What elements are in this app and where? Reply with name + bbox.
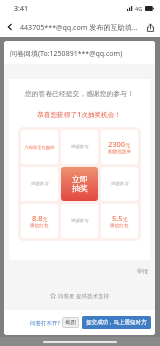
staticText: 443705***@qq.com 发布的互助填... xyxy=(20,22,141,32)
staticText: 立即 抽奖 xyxy=(72,174,88,194)
button[interactable]: 六福珠宝红酸奶 xyxy=(21,130,58,164)
staticText: 3:41 xyxy=(14,4,28,14)
staticText: 截图 xyxy=(65,319,76,326)
button[interactable]: Back xyxy=(0,17,20,37)
staticText: 感谢参与 xyxy=(71,144,89,150)
button[interactable]: 举报 xyxy=(137,268,155,275)
button[interactable]: 感谢参与 xyxy=(101,167,138,201)
staticText: 2300元 xyxy=(108,139,131,149)
staticText: 您的答卷已经提交，感谢您的参与！ xyxy=(25,89,134,98)
staticText: 8.8元 xyxy=(32,213,48,223)
staticText: 5.5元 xyxy=(112,213,128,223)
button[interactable]: 提交成功，马上通知对方 xyxy=(82,316,151,329)
staticText: 感谢参与 xyxy=(31,181,49,187)
staticText: 感谢参与 xyxy=(111,181,129,187)
staticText: 感谢参与 xyxy=(71,218,89,224)
button[interactable]: 感谢参与 xyxy=(61,130,98,164)
button[interactable]: 8.8元 xyxy=(21,204,58,238)
button[interactable]: 立即 抽奖 xyxy=(61,167,98,201)
staticText: 提交成功，马上通知对方 xyxy=(86,319,147,326)
button[interactable]: 5.5元 xyxy=(101,204,138,238)
button[interactable]: 感谢参与 xyxy=(21,167,58,201)
staticText: 购物优惠券 xyxy=(108,149,131,155)
staticText: 问卷星 提供技术支持 xyxy=(58,292,109,300)
staticText: 微信红包 xyxy=(110,223,129,229)
button[interactable]: Share xyxy=(141,17,160,37)
staticText: 4G xyxy=(135,5,143,12)
staticText: 恭喜您获得了1次抽奖机会！ xyxy=(37,110,122,119)
button[interactable]: 2300元 xyxy=(101,130,138,164)
button[interactable]: 问卷打不开? xyxy=(30,319,60,327)
staticText: 微信红包 xyxy=(30,223,49,229)
staticText: 问卷回填(To:1250891***@qq.com) xyxy=(10,49,123,59)
button[interactable]: 截图 xyxy=(62,317,79,328)
staticText: 六福珠宝红酸奶 xyxy=(24,145,55,150)
button[interactable]: 感谢参与 xyxy=(61,204,98,238)
